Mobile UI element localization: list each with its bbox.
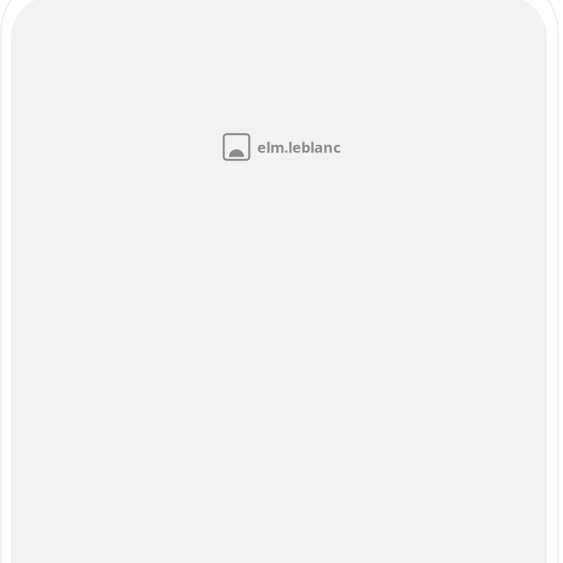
staticText: elm.leblanc xyxy=(257,137,341,157)
